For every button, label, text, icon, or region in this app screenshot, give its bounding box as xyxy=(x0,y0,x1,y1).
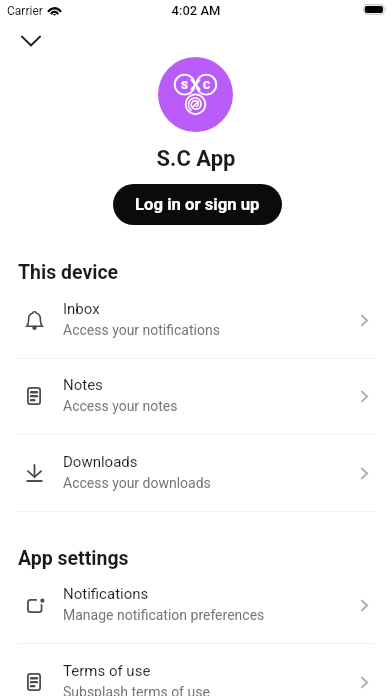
staticText: C xyxy=(203,79,211,92)
staticText: 4:02 AM xyxy=(0,3,392,18)
button[interactable]: Downloads xyxy=(0,435,392,511)
staticText: S.C App xyxy=(0,146,392,172)
staticText: Downloads xyxy=(63,453,138,471)
staticText: Carrier xyxy=(7,4,43,18)
button[interactable]: Close xyxy=(8,18,53,63)
other: Wi-Fi xyxy=(47,4,62,16)
staticText: Notes xyxy=(63,376,103,394)
staticText: Inbox xyxy=(63,300,100,318)
button[interactable]: Log in or sign up xyxy=(113,184,282,225)
button[interactable]: Notes xyxy=(0,358,392,434)
staticText: Access your notifications xyxy=(63,322,220,338)
staticText: Access your downloads xyxy=(63,475,211,491)
button[interactable]: Notifications xyxy=(0,567,392,643)
staticText: Manage notification preferences xyxy=(63,607,265,623)
other: Battery xyxy=(363,4,387,15)
staticText: This device xyxy=(18,261,119,284)
staticText: Subsplash terms of use xyxy=(63,684,210,696)
staticText: App settings xyxy=(18,547,129,570)
button[interactable]: Terms of use xyxy=(0,644,392,696)
button[interactable]: Inbox xyxy=(0,282,392,358)
staticText: S xyxy=(181,79,188,92)
staticText: Terms of use xyxy=(63,662,151,680)
staticText: Log in or sign up xyxy=(135,195,260,215)
staticText: Access your notes xyxy=(63,398,178,414)
staticText: Notifications xyxy=(63,585,149,603)
